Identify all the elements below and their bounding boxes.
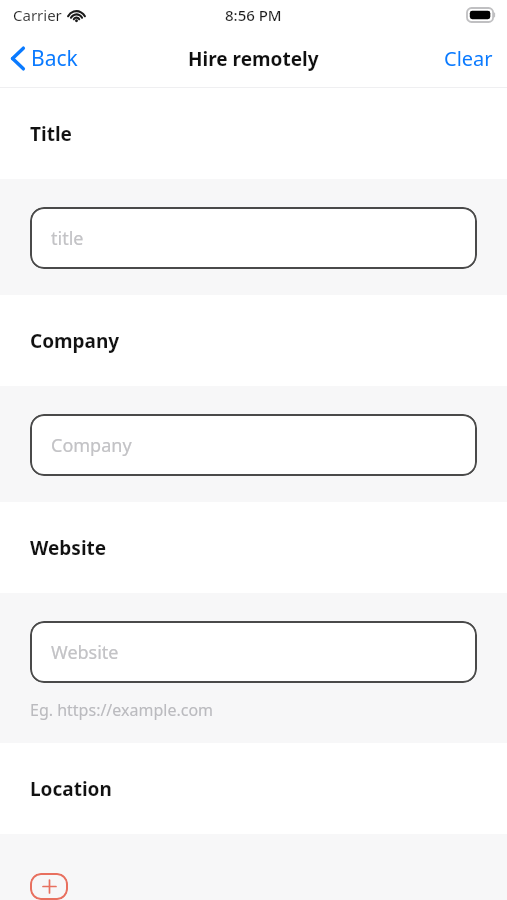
staticText: Clear	[444, 45, 493, 72]
staticText: Title	[30, 121, 72, 147]
staticText: title	[51, 226, 84, 251]
button[interactable]: Add location	[30, 873, 68, 900]
button[interactable]: Clear	[428, 37, 507, 80]
staticText: Website	[51, 640, 119, 665]
staticText: Hire remotely	[188, 46, 319, 72]
button[interactable]: Back	[0, 36, 92, 81]
button[interactable]: title	[30, 207, 477, 269]
staticText: Company	[30, 328, 120, 354]
staticText: Back	[31, 44, 78, 73]
staticText: 8:56 PM	[225, 5, 282, 25]
staticText: Location	[30, 776, 112, 802]
staticText: Website	[30, 535, 107, 561]
staticText: Carrier	[13, 5, 62, 25]
button[interactable]: Company	[30, 414, 477, 476]
staticText: Eg. https://example.com	[30, 699, 214, 721]
button[interactable]: Website	[30, 621, 477, 683]
staticText: Company	[51, 433, 132, 458]
